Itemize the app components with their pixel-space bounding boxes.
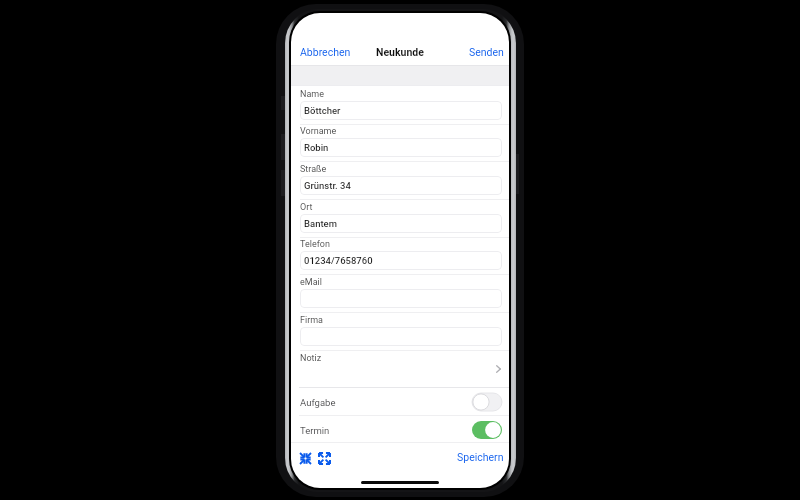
button[interactable]: Firma bbox=[291, 314, 509, 351]
button[interactable]: Telefon bbox=[291, 238, 509, 275]
staticText: Robin bbox=[304, 142, 329, 153]
button[interactable]: Aufgabe bbox=[291, 388, 509, 416]
button[interactable]: Senden bbox=[463, 42, 509, 66]
staticText: Notiz bbox=[300, 353, 322, 364]
button[interactable]: Abbrechen bbox=[291, 42, 357, 66]
staticText: Bantem bbox=[304, 218, 337, 229]
button[interactable]: Ort bbox=[291, 201, 509, 238]
button[interactable]: Straße bbox=[291, 163, 509, 200]
staticText: Firma bbox=[300, 315, 324, 326]
button[interactable]: Speichern bbox=[451, 448, 509, 466]
staticText: eMail bbox=[300, 277, 322, 288]
button[interactable]: Name bbox=[291, 88, 509, 125]
staticText: Senden bbox=[469, 46, 504, 58]
staticText: Böttcher bbox=[304, 105, 341, 116]
staticText: Grünstr. 34 bbox=[304, 180, 351, 191]
staticText: 01234/7658760 bbox=[304, 255, 373, 266]
staticText: Speichern bbox=[457, 451, 504, 463]
staticText: Telefon bbox=[300, 239, 330, 250]
staticText: Aufgabe bbox=[300, 397, 336, 408]
button[interactable]: Notiz bbox=[291, 351, 509, 387]
button[interactable]: Vorname bbox=[291, 125, 509, 162]
button[interactable]: eMail bbox=[291, 276, 509, 313]
button[interactable]: Expand view bbox=[318, 452, 331, 465]
button[interactable]: Collapse view bbox=[299, 452, 312, 465]
staticText: Ort bbox=[300, 202, 313, 213]
button[interactable]: Termin bbox=[291, 416, 509, 444]
staticText: Straße bbox=[300, 164, 327, 175]
staticText: Name bbox=[300, 89, 324, 100]
staticText: Vorname bbox=[300, 126, 337, 137]
staticText: Abbrechen bbox=[300, 46, 351, 58]
staticText: Neukunde bbox=[376, 46, 424, 58]
staticText: Termin bbox=[300, 425, 330, 436]
